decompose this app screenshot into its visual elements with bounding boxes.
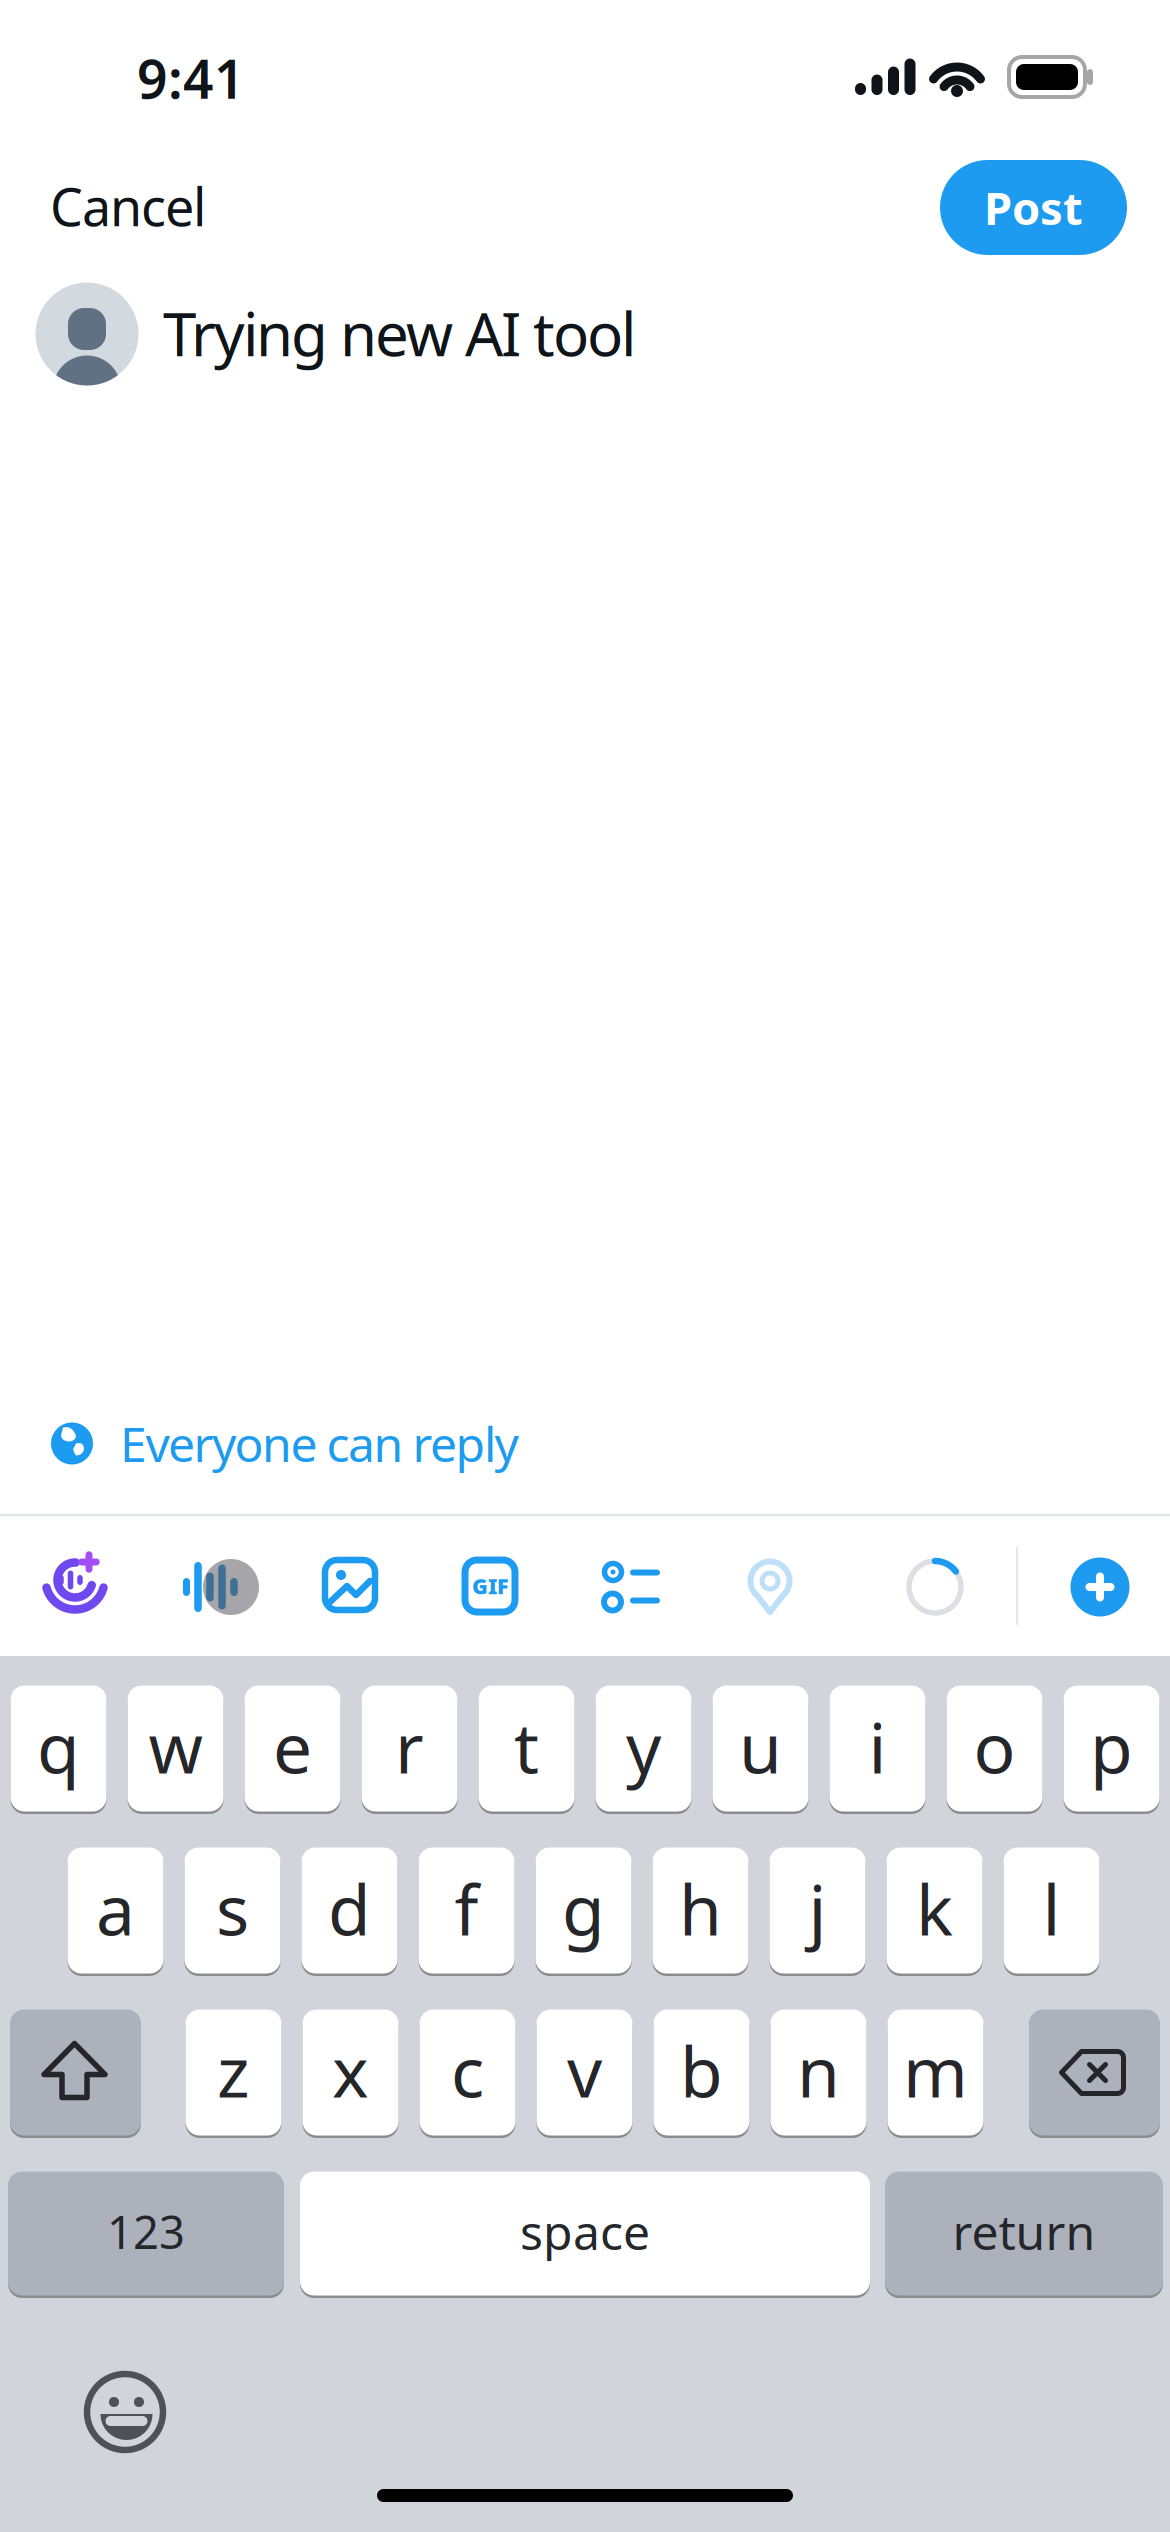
staticText: GIF — [472, 1572, 508, 1600]
staticText: Post — [984, 177, 1083, 238]
staticText: i — [868, 1700, 886, 1793]
button[interactable]: Post — [940, 160, 1127, 255]
staticText: Trying new AI tool — [163, 293, 636, 373]
staticText: o — [973, 1700, 1015, 1793]
button[interactable]: b — [653, 2008, 749, 2137]
staticText: d — [328, 1862, 371, 1955]
button[interactable]: d — [301, 1846, 397, 1975]
staticText: k — [916, 1862, 953, 1955]
staticText: a — [96, 1862, 135, 1955]
staticText: 9:41 — [137, 43, 245, 113]
staticText: 123 — [107, 2201, 185, 2262]
button[interactable]: y — [595, 1684, 691, 1813]
staticText: q — [37, 1700, 80, 1793]
button[interactable]: space — [300, 2170, 870, 2297]
button[interactable]: return — [885, 2170, 1163, 2297]
staticText: Everyone can reply — [120, 1412, 518, 1475]
button[interactable]: Everyone can reply — [50, 1411, 750, 1475]
button[interactable]: t — [478, 1684, 574, 1813]
staticText: e — [273, 1700, 312, 1793]
staticText: l — [1042, 1862, 1060, 1955]
button[interactable]: a — [67, 1846, 163, 1975]
staticText: p — [1090, 1700, 1133, 1793]
staticText: z — [217, 2024, 250, 2117]
button[interactable]: m — [887, 2008, 983, 2137]
button[interactable]: g — [535, 1846, 631, 1975]
button[interactable] — [740, 1550, 800, 1620]
staticText: c — [451, 2024, 484, 2117]
button[interactable]: 123 — [8, 2170, 284, 2297]
button[interactable]: n — [770, 2008, 866, 2137]
button[interactable]: u — [712, 1684, 808, 1813]
staticText: m — [903, 2024, 968, 2117]
staticText: space — [520, 2200, 650, 2263]
staticText: v — [567, 2024, 602, 2117]
button[interactable]: k — [886, 1846, 982, 1975]
button[interactable] — [320, 1555, 380, 1615]
button[interactable] — [38, 1542, 118, 1622]
staticText: r — [395, 1700, 424, 1793]
staticText: j — [808, 1862, 826, 1955]
staticText: h — [679, 1862, 722, 1955]
button[interactable]: s — [184, 1846, 280, 1975]
button[interactable]: l — [1003, 1846, 1099, 1975]
button[interactable]: f — [418, 1846, 514, 1975]
button[interactable]: v — [536, 2008, 632, 2137]
staticText: return — [952, 2200, 1095, 2263]
button[interactable]: p — [1063, 1684, 1159, 1813]
button[interactable]: Cancel — [50, 174, 350, 238]
button[interactable] — [1029, 2008, 1160, 2137]
staticText: g — [562, 1862, 605, 1955]
staticText: w — [148, 1700, 202, 1793]
button[interactable]: i — [829, 1684, 925, 1813]
staticText: x — [332, 2024, 369, 2117]
button[interactable]: q — [10, 1684, 106, 1813]
button[interactable] — [585, 1556, 665, 1616]
staticText: s — [216, 1862, 249, 1955]
button[interactable]: j — [769, 1846, 865, 1975]
button[interactable]: GIF — [460, 1556, 520, 1616]
button[interactable] — [83, 2370, 167, 2454]
staticText: y — [626, 1700, 661, 1793]
button[interactable] — [1070, 1557, 1130, 1617]
button[interactable]: h — [652, 1846, 748, 1975]
button[interactable]: r — [361, 1684, 457, 1813]
staticText: b — [680, 2024, 723, 2117]
button[interactable]: c — [419, 2008, 515, 2137]
staticText: t — [514, 1700, 539, 1793]
button[interactable]: x — [302, 2008, 398, 2137]
staticText: f — [454, 1862, 478, 1955]
button[interactable] — [172, 1547, 272, 1617]
button[interactable]: z — [185, 2008, 281, 2137]
button[interactable] — [10, 2008, 141, 2137]
button[interactable]: o — [946, 1684, 1042, 1813]
button[interactable]: e — [244, 1684, 340, 1813]
staticText: u — [739, 1700, 782, 1793]
button[interactable]: w — [127, 1684, 223, 1813]
staticText: Cancel — [50, 171, 206, 241]
staticText: n — [797, 2024, 840, 2117]
